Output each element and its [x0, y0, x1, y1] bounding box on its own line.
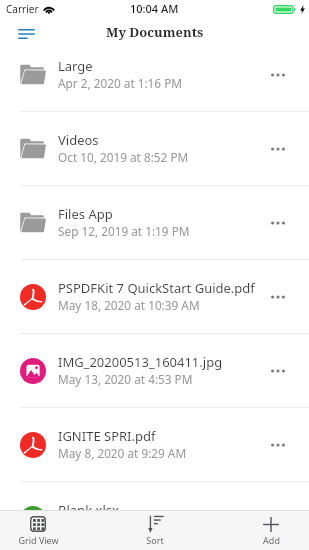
button[interactable]: Grid View — [8, 511, 68, 550]
staticText: Sort — [146, 534, 164, 546]
staticText: Oct 10, 2019 at 8:52 PM — [58, 149, 189, 165]
button[interactable]: IMG_20200513_160411.jpg — [0, 334, 309, 407]
button[interactable]: Files App — [0, 186, 309, 259]
button[interactable]: Menu — [8, 18, 42, 46]
staticText: IGNITE SPRI.pdf — [58, 427, 156, 445]
button[interactable]: Blank.xlsx — [0, 482, 309, 550]
button[interactable]: More options — [258, 408, 309, 481]
button[interactable]: IGNITE SPRI.pdf — [0, 408, 309, 481]
button[interactable]: Sort — [125, 511, 185, 550]
button[interactable]: More options — [258, 260, 309, 333]
staticText: Videos — [58, 131, 99, 149]
staticText: May 8, 2020 at 9:29 AM — [58, 445, 187, 461]
staticText: Blank.xlsx — [58, 501, 119, 519]
staticText: Large — [58, 57, 93, 75]
staticText: Add — [263, 534, 280, 546]
staticText: PSPDFKit 7 QuickStart Guide.pdf — [58, 279, 255, 297]
button[interactable]: More options — [258, 186, 309, 259]
staticText: Carrier — [6, 2, 39, 16]
staticText: Sep 12, 2019 at 1:19 PM — [58, 223, 190, 239]
button[interactable]: PSPDFKit 7 QuickStart Guide.pdf — [0, 260, 309, 333]
staticText: May 18, 2020 at 10:39 AM — [58, 297, 200, 313]
button[interactable]: More options — [258, 482, 309, 550]
staticText: My Documents — [106, 23, 204, 41]
staticText: Apr 2, 2020 at 1:16 PM — [58, 75, 183, 91]
staticText: May 1, 2020 at 1:02 PM — [58, 519, 186, 535]
staticText: May 13, 2020 at 4:53 PM — [58, 371, 193, 387]
button[interactable]: Add — [241, 511, 301, 550]
staticText: IMG_20200513_160411.jpg — [58, 353, 223, 371]
staticText: 10:04 AM — [130, 1, 179, 16]
staticText: Grid View — [18, 534, 59, 546]
button[interactable]: More options — [258, 112, 309, 185]
staticText: Files App — [58, 205, 113, 223]
button[interactable]: Videos — [0, 112, 309, 185]
button[interactable]: Large — [0, 38, 309, 111]
button[interactable]: More options — [258, 334, 309, 407]
button[interactable]: More options — [258, 38, 309, 111]
